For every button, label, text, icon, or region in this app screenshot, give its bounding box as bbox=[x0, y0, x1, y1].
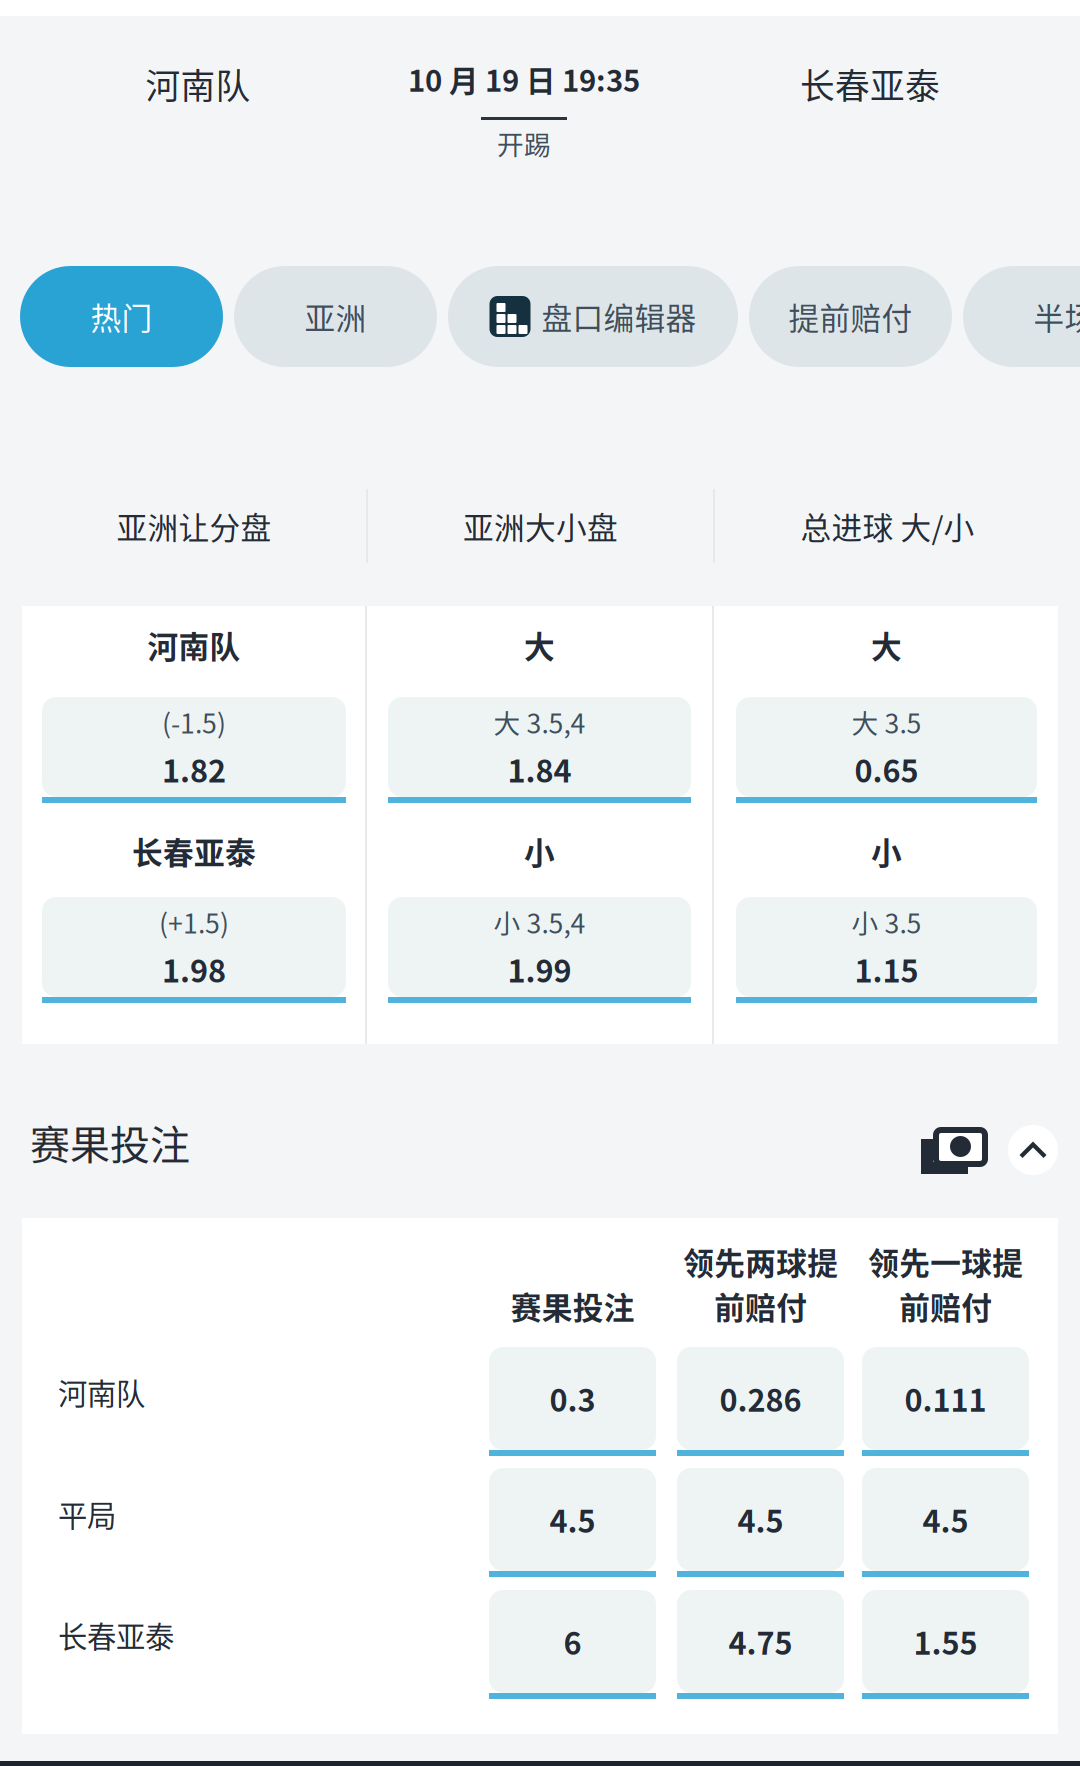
staticText: 赛果投注 bbox=[510, 1284, 634, 1328]
staticText: 4.5 bbox=[922, 1497, 968, 1542]
staticText: 领先一球提 前赔付 bbox=[868, 1239, 1023, 1328]
staticText: 亚洲让分盘 bbox=[116, 504, 271, 548]
button[interactable]: 提前结算 bbox=[921, 1127, 988, 1174]
staticText: 小 bbox=[524, 829, 555, 873]
button[interactable]: (-1.5) bbox=[42, 697, 346, 803]
staticText: 热门 bbox=[90, 294, 152, 339]
button[interactable]: 0.111 bbox=[862, 1347, 1029, 1456]
staticText: 10 月 19 日 19:35 bbox=[408, 58, 640, 100]
staticText: 盘口编辑器 bbox=[541, 294, 696, 339]
button[interactable]: 6 bbox=[489, 1590, 656, 1699]
staticText: 1.84 bbox=[507, 747, 571, 791]
button[interactable]: 热门 bbox=[20, 266, 223, 367]
staticText: 大 3.5 bbox=[851, 703, 921, 741]
staticText: 4.5 bbox=[549, 1497, 595, 1542]
button[interactable]: 提前赔付 bbox=[749, 266, 952, 367]
staticText: 平局 bbox=[58, 1493, 116, 1535]
staticText: 提前赔付 bbox=[788, 294, 912, 339]
staticText: 长春亚泰 bbox=[800, 59, 940, 109]
staticText: 6 bbox=[563, 1619, 581, 1664]
button[interactable]: 小 3.5 bbox=[736, 897, 1037, 1003]
staticText: 0.286 bbox=[719, 1376, 801, 1421]
button[interactable]: 亚洲 bbox=[234, 266, 437, 367]
staticText: 1.55 bbox=[913, 1619, 977, 1664]
button[interactable]: 4.5 bbox=[677, 1468, 844, 1577]
staticText: 小 3.5 bbox=[851, 903, 921, 941]
staticText: 亚洲 bbox=[304, 294, 366, 339]
staticText: 4.75 bbox=[728, 1619, 792, 1664]
staticText: 河南队 bbox=[58, 1371, 145, 1413]
staticText: 领先两球提 前赔付 bbox=[683, 1239, 838, 1328]
button[interactable]: 4.5 bbox=[862, 1468, 1029, 1577]
staticText: 0.111 bbox=[904, 1376, 986, 1421]
staticText: 大 3.5,4 bbox=[493, 703, 585, 741]
button[interactable]: 大 3.5,4 bbox=[388, 697, 691, 803]
staticText: 赛果投注 bbox=[30, 1113, 190, 1171]
staticText: 1.82 bbox=[162, 747, 226, 791]
staticText: 长春亚泰 bbox=[132, 829, 256, 873]
staticText: 总进球 大/小 bbox=[800, 504, 974, 548]
staticText: 0.3 bbox=[549, 1376, 595, 1421]
staticText: 河南队 bbox=[145, 59, 250, 109]
staticText: 大 bbox=[871, 623, 902, 667]
button[interactable]: (+1.5) bbox=[42, 897, 346, 1003]
staticText: 小 bbox=[871, 829, 902, 873]
staticText: 大 bbox=[524, 623, 555, 667]
staticText: 0.65 bbox=[854, 747, 918, 791]
staticText: 河南队 bbox=[147, 623, 240, 667]
button[interactable]: 0.3 bbox=[489, 1347, 656, 1456]
button[interactable]: 4.75 bbox=[677, 1590, 844, 1699]
staticText: 1.98 bbox=[162, 947, 226, 991]
button[interactable]: 大 3.5 bbox=[736, 697, 1037, 803]
button[interactable]: 0.286 bbox=[677, 1347, 844, 1456]
button[interactable]: 4.5 bbox=[489, 1468, 656, 1577]
button[interactable]: 收起 bbox=[1008, 1125, 1058, 1175]
staticText: 半场 bbox=[1033, 294, 1080, 339]
staticText: 小 3.5,4 bbox=[493, 903, 585, 941]
staticText: 长春亚泰 bbox=[58, 1614, 174, 1656]
button[interactable]: 半场 bbox=[963, 266, 1080, 367]
staticText: 4.5 bbox=[737, 1497, 783, 1542]
staticText: (+1.5) bbox=[159, 903, 229, 941]
button[interactable]: 小 3.5,4 bbox=[388, 897, 691, 1003]
button[interactable]: 1.55 bbox=[862, 1590, 1029, 1699]
staticText: 亚洲大小盘 bbox=[463, 504, 618, 548]
staticText: 1.15 bbox=[854, 947, 918, 991]
staticText: (-1.5) bbox=[162, 703, 226, 741]
staticText: 1.99 bbox=[507, 947, 571, 991]
button[interactable]: 盘口编辑器 bbox=[448, 266, 738, 367]
staticText: 开踢 bbox=[497, 124, 551, 162]
